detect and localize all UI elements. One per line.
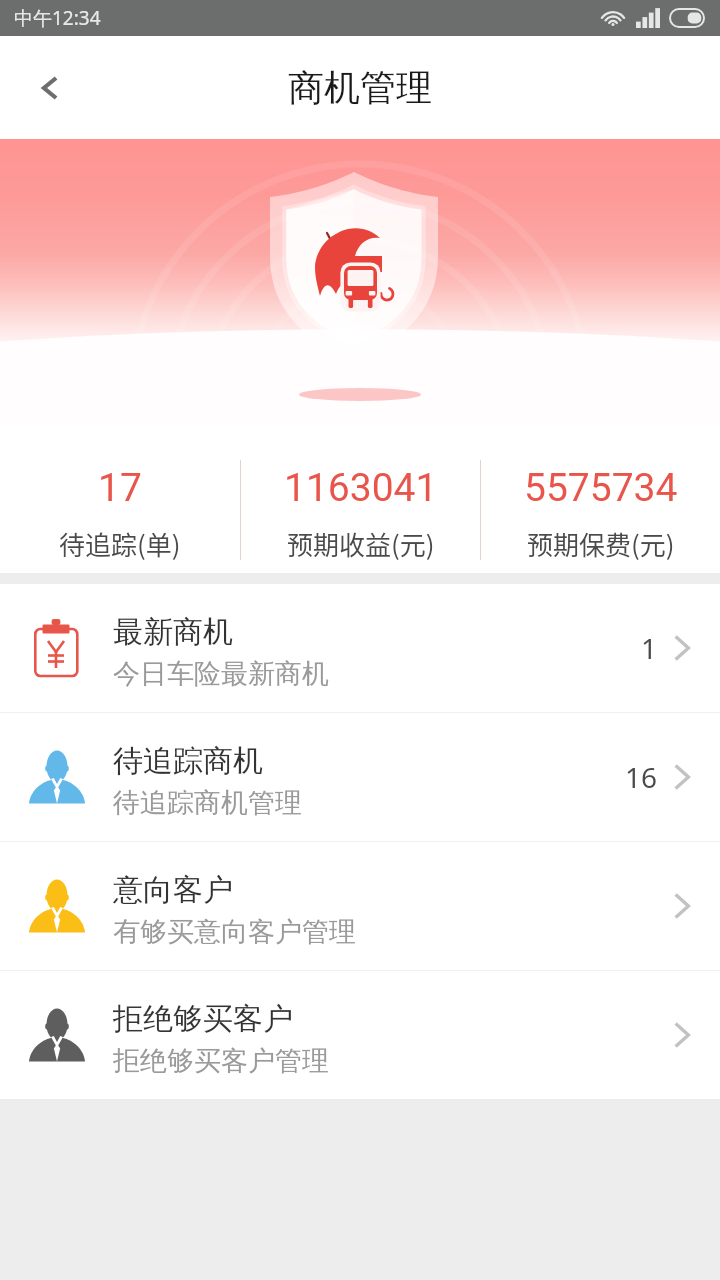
- staticText: 5575734: [524, 465, 678, 511]
- staticText: 中午12:34: [14, 5, 101, 31]
- staticText: 17: [98, 465, 142, 511]
- staticText: 今日车险最新商机: [113, 657, 329, 691]
- staticText: 1163041: [284, 465, 438, 511]
- staticText: 最新商机: [113, 613, 233, 651]
- staticText: 1: [641, 629, 658, 667]
- staticText: 意向客户: [113, 871, 233, 909]
- staticText: 预期保费(元): [527, 525, 675, 563]
- staticText: 有够买意向客户管理: [113, 915, 356, 949]
- staticText: 拒绝够买客户: [113, 1000, 293, 1038]
- button[interactable]: 待追踪商机: [0, 713, 720, 841]
- staticText: 16: [625, 758, 658, 796]
- staticText: 待追踪商机管理: [113, 786, 302, 820]
- staticText: 预期收益(元): [287, 525, 435, 563]
- button[interactable]: 拒绝够买客户: [0, 971, 720, 1099]
- button[interactable]: 最新商机: [0, 584, 720, 712]
- staticText: 商机管理: [288, 65, 432, 110]
- button[interactable]: 意向客户: [0, 842, 720, 970]
- staticText: 待追踪(单): [59, 525, 181, 563]
- staticText: 拒绝够买客户管理: [113, 1044, 329, 1078]
- staticText: 待追踪商机: [113, 742, 263, 780]
- button[interactable]: Back: [0, 38, 100, 138]
